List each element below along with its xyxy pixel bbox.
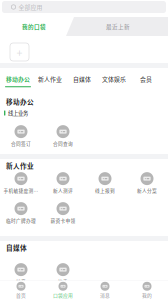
staticText: 我的口袋 [22, 22, 46, 30]
button[interactable]: 新人作业 [34, 72, 66, 90]
button[interactable]: 我的口袋 [0, 17, 68, 36]
staticText: 口袋应用 [53, 292, 73, 299]
staticText: 手机敏捷度测… [3, 187, 38, 194]
staticText: 移动办公 [6, 97, 34, 106]
staticText: 合同查询 [53, 140, 73, 147]
staticText: 线上业务 [8, 109, 28, 117]
button[interactable]: 消息 [84, 281, 126, 299]
button[interactable]: 合同查询 [42, 124, 84, 148]
staticText: 薪资卡申领 [50, 217, 75, 224]
button[interactable]: 新人分案 [126, 171, 168, 195]
staticText: 新人作业 [38, 75, 62, 83]
staticText: 自媒体 [73, 75, 91, 83]
button[interactable]: 薪资卡申领 [42, 201, 84, 225]
staticText: 首页 [16, 292, 26, 299]
staticText: 线上报到 [95, 187, 115, 194]
button[interactable]: 临时广牌办理 [0, 201, 42, 225]
button[interactable]: 口袋应用 [42, 281, 84, 299]
button[interactable]: 合同签订 [0, 124, 42, 148]
button[interactable]: 快手 [42, 262, 84, 286]
staticText: 全部应用 [18, 3, 42, 11]
staticText: 最近上新 [106, 22, 130, 30]
button[interactable]: 新人测评 [42, 171, 84, 195]
staticText: 快手 [58, 278, 68, 285]
button[interactable]: 线上报到 [84, 171, 126, 195]
button[interactable]: 抖音 [0, 262, 42, 286]
staticText: 我的 [142, 292, 152, 299]
button[interactable]: 移动办公 [2, 72, 34, 90]
staticText: 移动办公 [6, 75, 30, 83]
staticText: 文体娱乐 [102, 75, 126, 83]
button[interactable]: 手机敏捷度测… [0, 171, 42, 195]
staticText: 消息 [100, 292, 110, 299]
staticText: 自媒体 [6, 243, 27, 252]
button[interactable]: 会员 [130, 72, 162, 90]
staticText: + [16, 44, 22, 60]
staticText: 新人分案 [137, 187, 157, 194]
staticText: 新人测评 [53, 187, 73, 194]
staticText: 合同签订 [11, 140, 31, 147]
button[interactable]: 首页 [0, 281, 42, 299]
staticText: 抖音 [16, 278, 26, 285]
staticText: 新人作业 [6, 161, 34, 170]
button[interactable]: 最近上新 [68, 17, 168, 36]
button[interactable]: 自媒体 [66, 72, 98, 90]
button[interactable]: Add app [10, 43, 29, 61]
staticText: 临时广牌办理 [6, 217, 36, 224]
button[interactable]: 我的 [126, 281, 168, 299]
button[interactable]: 文体娱乐 [98, 72, 130, 90]
staticText: 会员 [140, 75, 152, 83]
